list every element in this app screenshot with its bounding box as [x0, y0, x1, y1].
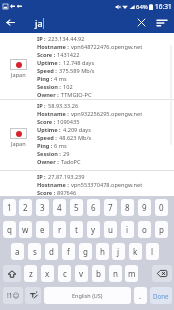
staticText: h: [100, 246, 105, 257]
button[interactable]: .: [134, 287, 147, 304]
staticText: Session :: [37, 150, 63, 158]
button[interactable]: w: [19, 221, 32, 238]
button[interactable]: m: [125, 265, 138, 282]
button[interactable]: 9: [138, 199, 151, 216]
staticText: vpn553370478.opengw.net: [71, 181, 143, 189]
button[interactable]: Clear search: [133, 14, 150, 31]
button[interactable]: 3: [36, 199, 49, 216]
staticText: t: [75, 224, 78, 235]
button[interactable]: Done: [150, 287, 172, 304]
staticText: r: [58, 224, 62, 235]
button[interactable]: g: [79, 243, 92, 260]
staticText: 29: [63, 150, 70, 158]
staticText: p: [159, 224, 164, 235]
button[interactable]: Japan: [0, 33, 174, 99]
staticText: w: [22, 224, 29, 235]
button[interactable]: x: [41, 265, 54, 282]
button[interactable]: Symbols: [3, 287, 23, 304]
button[interactable]: n: [109, 265, 122, 282]
staticText: Hostname :: [37, 181, 71, 189]
button[interactable]: p: [155, 221, 168, 238]
button[interactable]: e: [36, 221, 49, 238]
button[interactable]: IP :: [0, 171, 174, 195]
button[interactable]: a: [11, 243, 24, 260]
button[interactable]: s: [28, 243, 41, 260]
staticText: Japan: [11, 140, 26, 148]
staticText: 27.87.193.239: [48, 173, 85, 181]
staticText: 1090435: [57, 118, 80, 126]
button[interactable]: h: [96, 243, 109, 260]
button[interactable]: l: [146, 243, 159, 260]
button[interactable]: f: [62, 243, 75, 260]
button[interactable]: v: [75, 265, 88, 282]
staticText: 5: [74, 202, 79, 213]
staticText: Score :: [37, 118, 57, 126]
button[interactable]: Shift: [3, 265, 21, 282]
staticText: Score :: [37, 51, 57, 59]
staticText: 6 ms: [54, 142, 67, 150]
button[interactable]: t: [70, 221, 83, 238]
button[interactable]: 4: [53, 199, 66, 216]
staticText: Owner :: [37, 158, 61, 166]
button[interactable]: d: [45, 243, 58, 260]
staticText: o: [142, 224, 147, 235]
button[interactable]: c: [58, 265, 71, 282]
staticText: TTMGIO-PC: [61, 91, 92, 99]
staticText: m: [128, 268, 136, 279]
staticText: English (US): [72, 292, 103, 299]
button[interactable]: i: [121, 221, 134, 238]
staticText: e: [40, 224, 45, 235]
staticText: s: [33, 246, 37, 257]
button[interactable]: j: [112, 243, 125, 260]
button[interactable]: u: [104, 221, 117, 238]
button[interactable]: 2: [19, 199, 32, 216]
staticText: vpn932256295.opengw.net: [71, 110, 143, 118]
staticText: 223.134.44.92: [48, 35, 85, 43]
button[interactable]: 7: [104, 199, 117, 216]
staticText: 48.623 Mb/s: [59, 134, 92, 142]
staticText: TadoPC: [61, 158, 81, 166]
button[interactable]: 1: [3, 199, 16, 216]
staticText: vpn648722476.opengw.net: [71, 43, 143, 51]
button[interactable]: o: [138, 221, 151, 238]
staticText: Hostname :: [37, 43, 71, 51]
button[interactable]: Japan: [0, 100, 174, 170]
staticText: 7: [108, 202, 113, 213]
staticText: Ping :: [37, 142, 54, 150]
button[interactable]: 0: [155, 199, 168, 216]
button[interactable]: z: [24, 265, 37, 282]
button[interactable]: 8: [121, 199, 134, 216]
button[interactable]: r: [53, 221, 66, 238]
staticText: Ping :: [37, 75, 54, 83]
staticText: z: [29, 268, 33, 279]
button[interactable]: 5: [70, 199, 83, 216]
button[interactable]: k: [129, 243, 142, 260]
staticText: k: [133, 246, 138, 257]
staticText: j: [117, 246, 120, 257]
staticText: f: [67, 246, 70, 257]
staticText: x: [45, 268, 50, 279]
staticText: Japan: [11, 71, 26, 79]
button[interactable]: Handwriting: [25, 287, 41, 304]
button[interactable]: Backspace: [152, 265, 172, 282]
staticText: 1431422: [57, 51, 80, 59]
staticText: Speed :: [37, 134, 59, 142]
button[interactable]: b: [92, 265, 105, 282]
button[interactable]: English (US): [44, 287, 131, 304]
button[interactable]: 6: [87, 199, 100, 216]
button[interactable]: Back: [0, 12, 21, 33]
staticText: 58.93.33.26: [48, 102, 79, 110]
button[interactable]: y: [87, 221, 100, 238]
staticText: 1: [7, 202, 12, 213]
staticText: !1☺: [7, 291, 20, 300]
staticText: n: [113, 268, 118, 279]
button[interactable]: q: [3, 221, 16, 238]
button[interactable]: Sort: [153, 14, 170, 31]
staticText: Done: [153, 292, 169, 300]
staticText: 6: [91, 202, 96, 213]
staticText: 102: [63, 83, 73, 91]
staticText: 897646: [57, 189, 77, 195]
staticText: i: [126, 224, 129, 235]
staticText: Uptime :: [37, 59, 63, 67]
staticText: b: [96, 268, 101, 279]
